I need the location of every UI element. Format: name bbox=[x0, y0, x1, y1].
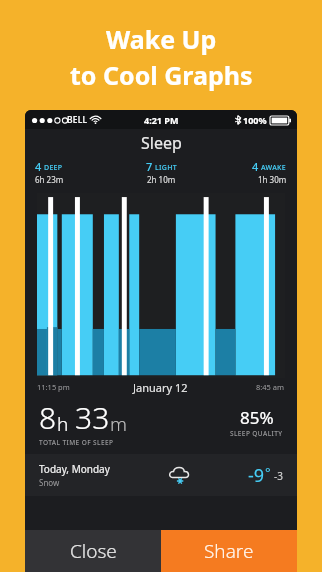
staticText: Share bbox=[204, 538, 254, 564]
staticText: Wake Up bbox=[106, 22, 217, 56]
staticText: -3 bbox=[274, 469, 283, 483]
staticText: Today, Monday bbox=[39, 462, 110, 476]
staticText: 33 bbox=[75, 397, 110, 438]
staticText: 1h 30m bbox=[258, 174, 287, 185]
staticText: Sleep bbox=[141, 132, 182, 154]
staticText: 6h 23m bbox=[35, 174, 64, 185]
staticText: SLEEP QUALITY bbox=[230, 429, 283, 438]
staticText: Snow bbox=[39, 477, 60, 488]
staticText: -9 bbox=[248, 463, 265, 488]
staticText: AWAKE bbox=[261, 163, 287, 173]
staticText: DEEP bbox=[44, 163, 63, 173]
staticText: 85% bbox=[240, 406, 274, 429]
staticText: 8:45 am bbox=[256, 382, 285, 392]
staticText: 8 bbox=[39, 397, 57, 438]
staticText: ° bbox=[265, 463, 271, 481]
button[interactable]: Close bbox=[25, 530, 161, 572]
staticText: Close bbox=[70, 538, 117, 564]
staticText: TOTAL TIME OF SLEEP bbox=[39, 438, 114, 447]
button[interactable]: Today, Monday bbox=[25, 454, 297, 496]
staticText: 4:21 PM bbox=[144, 114, 179, 126]
staticText: January 12 bbox=[133, 380, 188, 395]
staticText: to Cool Graphs bbox=[70, 58, 253, 92]
staticText: 2h 10m bbox=[147, 174, 176, 185]
staticText: 11:15 pm bbox=[37, 382, 133, 392]
staticText: h bbox=[57, 411, 69, 437]
staticText: LIGHT bbox=[155, 163, 177, 173]
staticText: BELL bbox=[67, 114, 88, 126]
staticText: 4 bbox=[35, 159, 42, 174]
staticText: 100% bbox=[243, 114, 267, 126]
staticText: m bbox=[110, 411, 127, 437]
staticText: 4 bbox=[252, 159, 259, 174]
button[interactable]: Share bbox=[161, 530, 297, 572]
staticText: 7 bbox=[146, 159, 153, 174]
